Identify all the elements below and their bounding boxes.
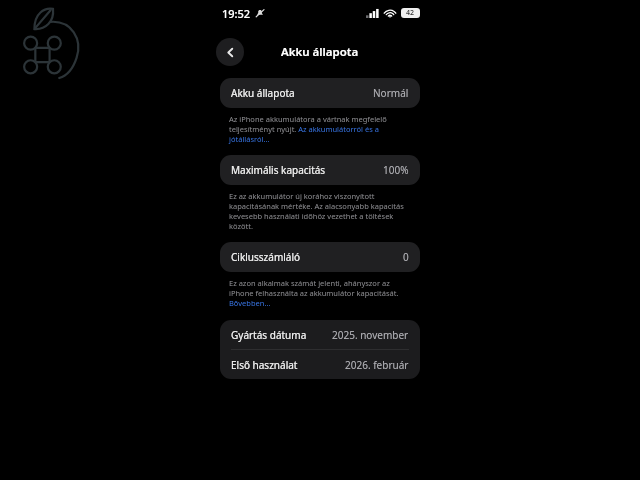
staticText: Akku állapota <box>231 86 295 100</box>
staticText: 100% <box>383 163 409 177</box>
button[interactable]: Back <box>216 38 244 66</box>
staticText: Ez az akkumulátor új korához viszonyítot… <box>229 191 414 231</box>
staticText: 19:52 <box>222 6 251 21</box>
staticText: Normál <box>373 86 409 100</box>
staticText: 42 <box>406 8 415 18</box>
staticText: 2026. február <box>345 358 409 372</box>
staticText: Akku állapota <box>281 44 359 60</box>
button[interactable]: Akku állapota <box>220 78 420 108</box>
button[interactable]: Gyártás dátuma <box>220 320 420 349</box>
button[interactable]: Ciklusszámláló <box>220 242 420 272</box>
button[interactable]: Maximális kapacitás <box>220 155 420 185</box>
staticText: Ciklusszámláló <box>231 250 301 264</box>
staticText: Első használat <box>231 358 298 372</box>
staticText: 0 <box>403 250 409 264</box>
staticText: Gyártás dátuma <box>231 328 307 342</box>
staticText: 2025. november <box>332 328 409 342</box>
staticText: Maximális kapacitás <box>231 163 326 177</box>
button[interactable]: Első használat <box>220 350 420 379</box>
staticText: Az iPhone akkumulátora a vártnak megfele… <box>229 114 414 144</box>
staticText: Ez azon alkalmak számát jelenti, ahánysz… <box>229 278 414 308</box>
